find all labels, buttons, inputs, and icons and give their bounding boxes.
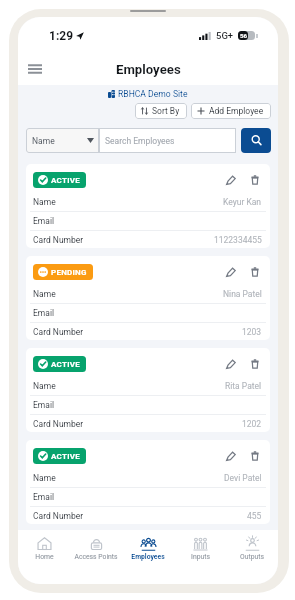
staticText: Outputs: [240, 553, 264, 561]
button[interactable]: Name: [26, 128, 99, 153]
button[interactable]: Delete: [251, 359, 259, 369]
button[interactable]: Add Employee: [191, 103, 271, 119]
staticText: Home: [35, 553, 54, 561]
button[interactable]: Edit: [226, 451, 236, 461]
staticText: Name: [33, 381, 56, 391]
staticText: Email: [33, 400, 55, 410]
staticText: PENDING: [51, 268, 87, 277]
staticText: Email: [33, 308, 55, 318]
staticText: 5G+: [216, 30, 234, 41]
button[interactable]: Edit: [226, 359, 236, 369]
button[interactable]: ACTIVE: [26, 164, 270, 248]
staticText: 1203: [242, 327, 262, 337]
staticText: Card Number: [33, 327, 84, 337]
staticText: Name: [32, 136, 55, 146]
staticText: 455: [247, 511, 262, 521]
staticText: Name: [33, 473, 56, 483]
button[interactable]: Search: [241, 128, 271, 153]
staticText: Add Employee: [209, 106, 264, 116]
staticText: Email: [33, 492, 55, 502]
staticText: Inputs: [191, 553, 210, 561]
button[interactable]: Access Points: [70, 536, 122, 584]
staticText: Email: [33, 216, 55, 226]
button[interactable]: ACTIVE: [26, 348, 270, 432]
button[interactable]: Edit: [226, 175, 236, 185]
button[interactable]: Sort By: [135, 103, 187, 119]
button[interactable]: Menu: [26, 61, 44, 77]
staticText: Name: [33, 197, 56, 207]
staticText: Devi Patel: [224, 473, 262, 483]
button[interactable]: Search Employees: [99, 128, 236, 153]
staticText: ACTIVE: [51, 452, 80, 461]
staticText: Name: [33, 289, 56, 299]
button[interactable]: Outputs: [226, 536, 278, 584]
button[interactable]: Home: [18, 536, 70, 584]
button[interactable]: PENDING: [26, 256, 270, 340]
staticText: Search Employees: [105, 136, 175, 146]
staticText: Employees: [131, 553, 165, 561]
staticText: Sort By: [152, 106, 180, 116]
staticText: ACTIVE: [51, 360, 80, 369]
button[interactable]: ACTIVE: [33, 448, 86, 464]
button[interactable]: ACTIVE: [33, 356, 86, 372]
button[interactable]: Delete: [251, 175, 259, 185]
button[interactable]: Delete: [251, 451, 259, 461]
staticText: Nina Patel: [223, 289, 262, 299]
staticText: 1:29: [49, 29, 74, 43]
button[interactable]: Edit: [226, 267, 236, 277]
button[interactable]: PENDING: [33, 264, 93, 280]
button[interactable]: Employees: [122, 536, 174, 584]
staticText: Card Number: [33, 419, 84, 429]
button[interactable]: ACTIVE: [33, 172, 86, 188]
staticText: Card Number: [33, 235, 84, 245]
staticText: RBHCA Demo Site: [118, 89, 188, 99]
staticText: Access Points: [74, 553, 118, 561]
button[interactable]: ACTIVE: [26, 440, 270, 524]
staticText: 1122334455: [214, 235, 262, 245]
staticText: 56: [240, 32, 248, 39]
staticText: Rita Patel: [225, 381, 262, 391]
staticText: Employees: [116, 62, 181, 77]
staticText: 1202: [242, 419, 262, 429]
button[interactable]: Inputs: [174, 536, 226, 584]
staticText: Keyur Kan: [223, 197, 262, 207]
button[interactable]: Delete: [251, 267, 259, 277]
staticText: ACTIVE: [51, 176, 80, 185]
staticText: Card Number: [33, 511, 84, 521]
